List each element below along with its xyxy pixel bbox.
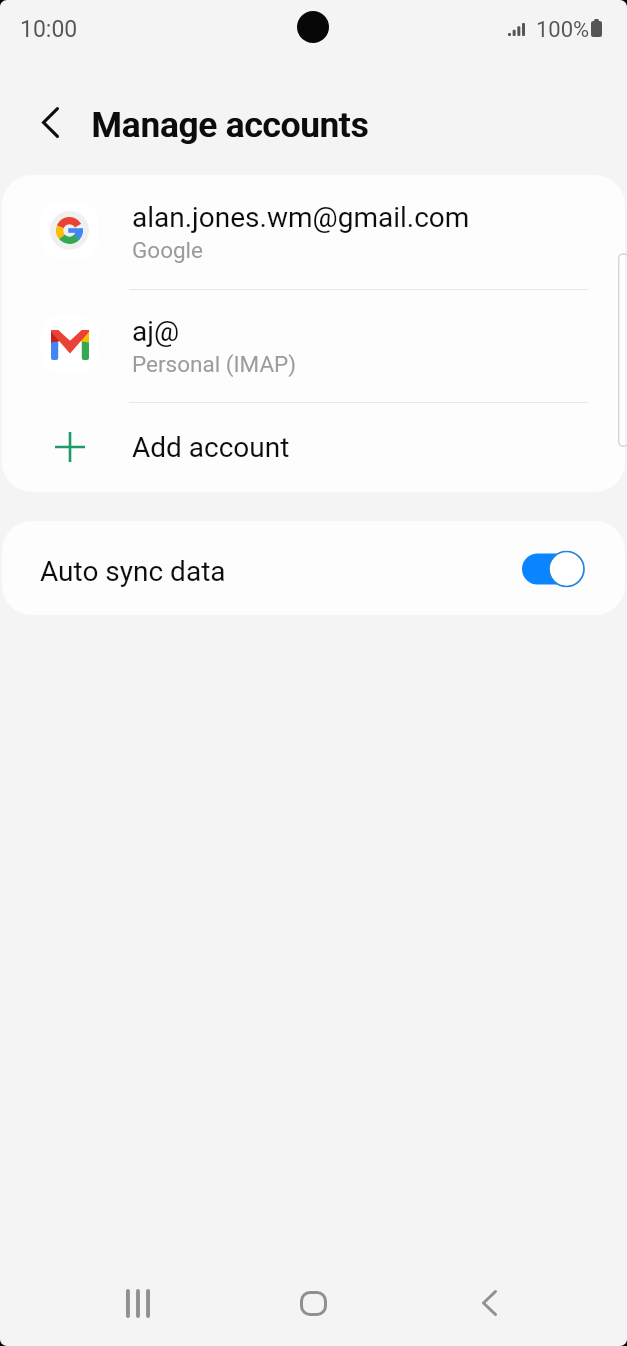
staticText: alan.jones.wm@gmail.com [132, 201, 470, 234]
button[interactable]: Back [445, 1271, 533, 1335]
staticText: Google [132, 237, 204, 263]
staticText: Auto sync data [40, 555, 226, 588]
staticText: Manage accounts [91, 105, 369, 146]
staticText: 10:00 [20, 16, 78, 43]
staticText: 100% [536, 17, 590, 43]
staticText: Add account [132, 431, 290, 464]
staticText: Personal (IMAP) [132, 351, 297, 377]
button[interactable]: Add account [2, 403, 625, 492]
staticText: aj@ [132, 315, 180, 348]
button[interactable]: Recent apps [94, 1271, 182, 1335]
button[interactable]: Home [269, 1271, 357, 1335]
button[interactable]: Auto sync data [2, 521, 625, 615]
button[interactable]: Navigate up [18, 90, 82, 154]
button[interactable]: alan.jones.wm@gmail.com [2, 175, 625, 289]
button[interactable]: aj@ [2, 290, 625, 402]
staticText: Manage accounts [92, 105, 370, 146]
